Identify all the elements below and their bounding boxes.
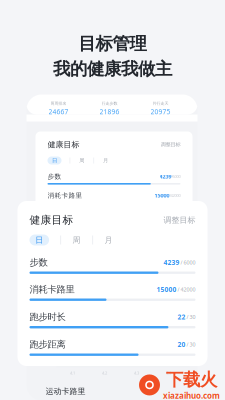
staticText: / 6000	[179, 259, 195, 266]
staticText: 4239	[163, 258, 179, 267]
staticText: 下载火	[166, 369, 217, 390]
staticText: 两周排名	[50, 101, 66, 106]
staticText: /6000	[171, 174, 180, 179]
staticText: 4.3	[134, 370, 139, 375]
staticText: 日	[52, 157, 57, 164]
staticText: 周	[79, 157, 84, 164]
staticText: / 30	[185, 313, 195, 321]
staticText: 4.1	[70, 370, 75, 375]
staticText: 消耗卡路里	[47, 191, 82, 200]
staticText: 步数	[47, 172, 61, 181]
staticText: 4239	[159, 173, 171, 180]
staticText: 跑步距离	[47, 229, 75, 238]
staticText: 目标管理	[78, 33, 146, 54]
staticText: 月	[105, 235, 113, 245]
staticText: 月	[103, 157, 108, 164]
button[interactable]: 周	[72, 234, 81, 245]
staticText: 22	[169, 211, 175, 218]
staticText: 行走步数	[101, 101, 117, 106]
button[interactable]: 月	[104, 234, 113, 245]
staticText: 21896	[99, 107, 119, 116]
staticText: /30	[175, 212, 180, 217]
staticText: 健康目标	[29, 213, 73, 226]
staticText: / 42000	[176, 286, 195, 293]
staticText: 跑步距离	[29, 339, 65, 350]
staticText: 15000	[156, 285, 176, 294]
staticText: 20975	[150, 107, 170, 116]
staticText: 调整目标	[163, 215, 195, 225]
staticText: /42000	[169, 193, 180, 198]
staticText: 20	[177, 340, 185, 349]
staticText: 22	[177, 313, 185, 321]
staticText: 24667	[48, 107, 68, 116]
button[interactable]: 调整目标	[163, 214, 195, 226]
staticText: 跑步时长	[47, 210, 75, 219]
staticText: 日	[35, 235, 43, 245]
staticText: / 30	[185, 341, 195, 348]
staticText: 健康目标	[47, 140, 79, 149]
staticText: 消耗卡路里	[29, 284, 74, 295]
staticText: 我的健康我做主	[53, 58, 172, 80]
staticText: 4.4	[166, 370, 171, 375]
staticText: 15000	[154, 192, 169, 199]
staticText: xiazaihuo.com	[163, 390, 220, 400]
staticText: 调整目标	[160, 141, 180, 148]
staticText: 步数	[29, 257, 47, 268]
staticText: 运动卡路里	[45, 386, 85, 396]
staticText: 跑步时长	[29, 311, 65, 323]
staticText: 4.2	[102, 370, 107, 375]
button[interactable]: 日	[29, 234, 49, 245]
staticText: 共行走天	[152, 101, 168, 106]
staticText: 周	[73, 235, 81, 245]
